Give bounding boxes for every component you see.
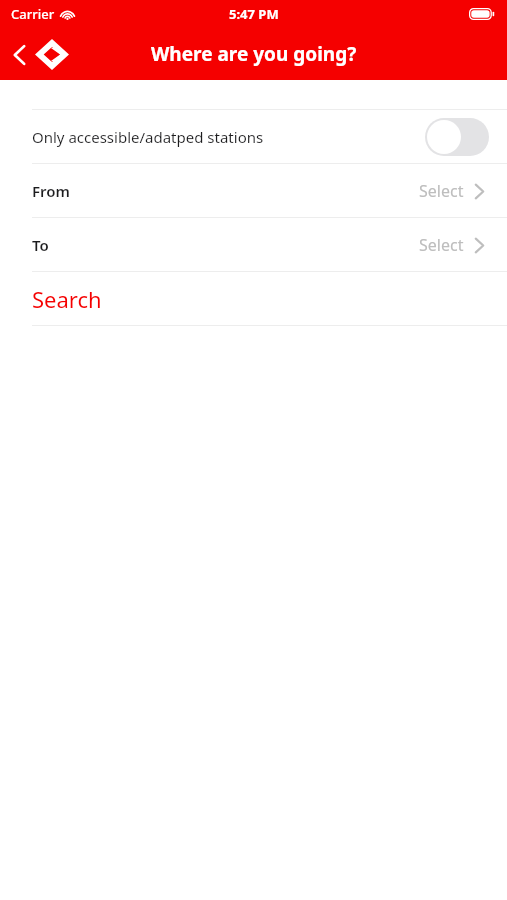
staticText: Where are you going? <box>151 41 357 67</box>
staticText: To <box>32 235 49 255</box>
button[interactable]: Only accessible stations toggle <box>425 118 489 156</box>
staticText: 5:47 PM <box>229 5 279 23</box>
staticText: Only accessible/adatped stations <box>32 127 264 147</box>
button[interactable]: From <box>0 164 507 217</box>
staticText: Search <box>32 284 102 314</box>
staticText: Select <box>419 180 464 202</box>
button[interactable]: Search <box>0 272 507 325</box>
button[interactable]: Back <box>0 34 79 75</box>
button[interactable]: To <box>0 218 507 271</box>
staticText: Carrier <box>11 5 55 23</box>
staticText: From <box>32 181 70 201</box>
staticText: Select <box>419 234 464 256</box>
button[interactable]: Only accessible/adatped stations <box>0 110 507 163</box>
